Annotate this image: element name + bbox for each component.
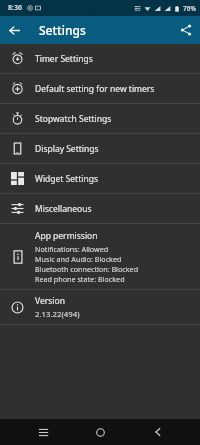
button[interactable]: Stopwatch Settings — [0, 104, 200, 133]
button[interactable]: Home — [85, 419, 115, 445]
staticText: Notifications: Allowed — [35, 244, 109, 254]
staticText: Version — [35, 295, 65, 307]
staticText: Settings — [39, 22, 86, 38]
button[interactable]: Back — [0, 16, 28, 44]
staticText: Widget Settings — [35, 173, 98, 185]
staticText: Default setting for new timers — [35, 83, 155, 95]
staticText: Display Settings — [35, 143, 99, 155]
staticText: 8:36 — [8, 3, 22, 13]
staticText: Read phone state: Blocked — [35, 274, 125, 284]
staticText: Stopwatch Settings — [35, 113, 112, 125]
button[interactable]: Recent apps — [28, 419, 58, 445]
staticText: Timer Settings — [35, 53, 93, 65]
staticText: Bluetooth connection: Blocked — [35, 264, 139, 274]
button[interactable]: App permission — [0, 224, 200, 289]
button[interactable]: Default setting for new timers — [0, 74, 200, 103]
staticText: App permission — [35, 230, 98, 242]
button[interactable]: Widget Settings — [0, 164, 200, 193]
button[interactable]: Miscellaneous — [0, 194, 200, 223]
button[interactable]: Timer Settings — [0, 44, 200, 73]
button[interactable]: Display Settings — [0, 134, 200, 163]
staticText: 2.13.22(494) — [35, 309, 80, 320]
staticText: Music and Audio: Blocked — [35, 254, 122, 264]
button[interactable]: Share — [172, 16, 200, 44]
staticText: Miscellaneous — [35, 203, 92, 215]
staticText: 76% — [183, 4, 196, 13]
button[interactable]: Back — [143, 419, 173, 445]
button[interactable]: Version — [0, 290, 200, 324]
